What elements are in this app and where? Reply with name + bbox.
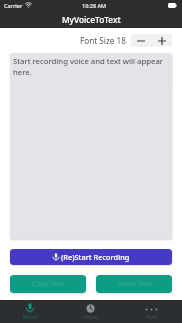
button[interactable]: Share Text — [96, 275, 172, 293]
button[interactable]: Copy Text — [10, 275, 86, 293]
staticText: More — [146, 314, 158, 320]
staticText: Font Size 18 — [80, 35, 126, 46]
button[interactable]: More — [121, 300, 182, 323]
staticText: MyVoiceToText — [62, 14, 121, 25]
button[interactable]: (Re)Start Recording — [10, 249, 172, 265]
button[interactable]: Record — [0, 300, 60, 323]
button[interactable]: History — [60, 300, 121, 323]
staticText: History — [83, 314, 99, 320]
staticText: (Re)Start Recording — [61, 252, 130, 262]
staticText: 10:28 AM — [82, 2, 107, 9]
staticText: Carrier — [4, 2, 23, 9]
staticText: Record — [22, 314, 38, 320]
button[interactable]: Decrease font size — [131, 34, 151, 47]
staticText: Start recording voice and text will appe… — [13, 56, 164, 78]
staticText: Share Text — [117, 279, 152, 289]
staticText: Copy Text — [32, 279, 65, 289]
button[interactable]: Increase font size — [151, 34, 172, 47]
